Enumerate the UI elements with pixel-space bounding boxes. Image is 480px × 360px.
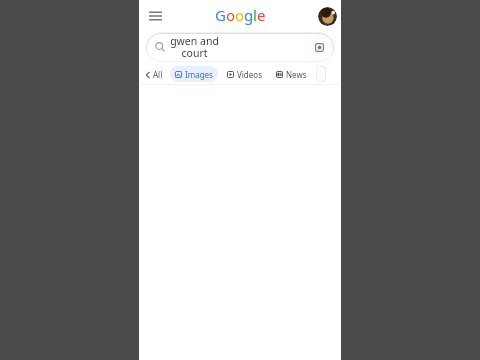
button[interactable]: Account bbox=[316, 5, 338, 27]
button[interactable]: All bbox=[142, 67, 166, 82]
staticText: Videos bbox=[237, 69, 262, 80]
staticText: e bbox=[257, 5, 266, 25]
staticText: o bbox=[226, 5, 235, 25]
staticText: News bbox=[286, 69, 307, 80]
button[interactable]: More filters bbox=[316, 66, 326, 82]
other: Search bbox=[151, 38, 169, 56]
button[interactable]: News bbox=[271, 66, 312, 82]
staticText: o bbox=[235, 5, 244, 25]
staticText: Images bbox=[185, 69, 213, 80]
staticText: All bbox=[153, 69, 163, 80]
button[interactable]: Menu bbox=[143, 4, 167, 28]
button[interactable]: Search bbox=[146, 32, 334, 62]
button[interactable]: Images bbox=[170, 66, 218, 82]
staticText: gwen and court bbox=[170, 34, 219, 60]
button[interactable]: Videos bbox=[222, 66, 267, 82]
staticText: G bbox=[215, 5, 226, 25]
staticText: g bbox=[244, 5, 253, 25]
staticText: l bbox=[253, 5, 257, 25]
button[interactable]: Google Lens bbox=[310, 38, 328, 56]
